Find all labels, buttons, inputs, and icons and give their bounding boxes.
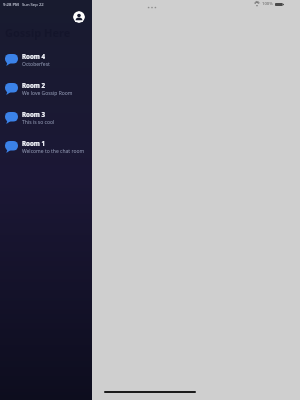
staticText: Room 1 [22,139,45,147]
button[interactable]: Account [73,11,85,23]
button[interactable]: Room 3 [0,103,92,132]
staticText: Welcome to the chat room [22,148,85,155]
staticText: This is so cool [22,119,55,126]
staticText: Room 3 [22,110,45,118]
button[interactable]: Room 4 [0,45,92,74]
staticText: Room 2 [22,81,45,89]
staticText: 100% [262,1,273,7]
staticText: 9:28 PM [3,2,19,8]
button[interactable]: Room 1 [0,132,92,161]
button[interactable]: Room 2 [0,74,92,103]
staticText: Octoberfest [22,61,50,68]
staticText: We love Gossip Room [22,90,73,97]
staticText: Room 4 [22,52,45,60]
staticText: Sun Sep 22 [22,2,44,8]
